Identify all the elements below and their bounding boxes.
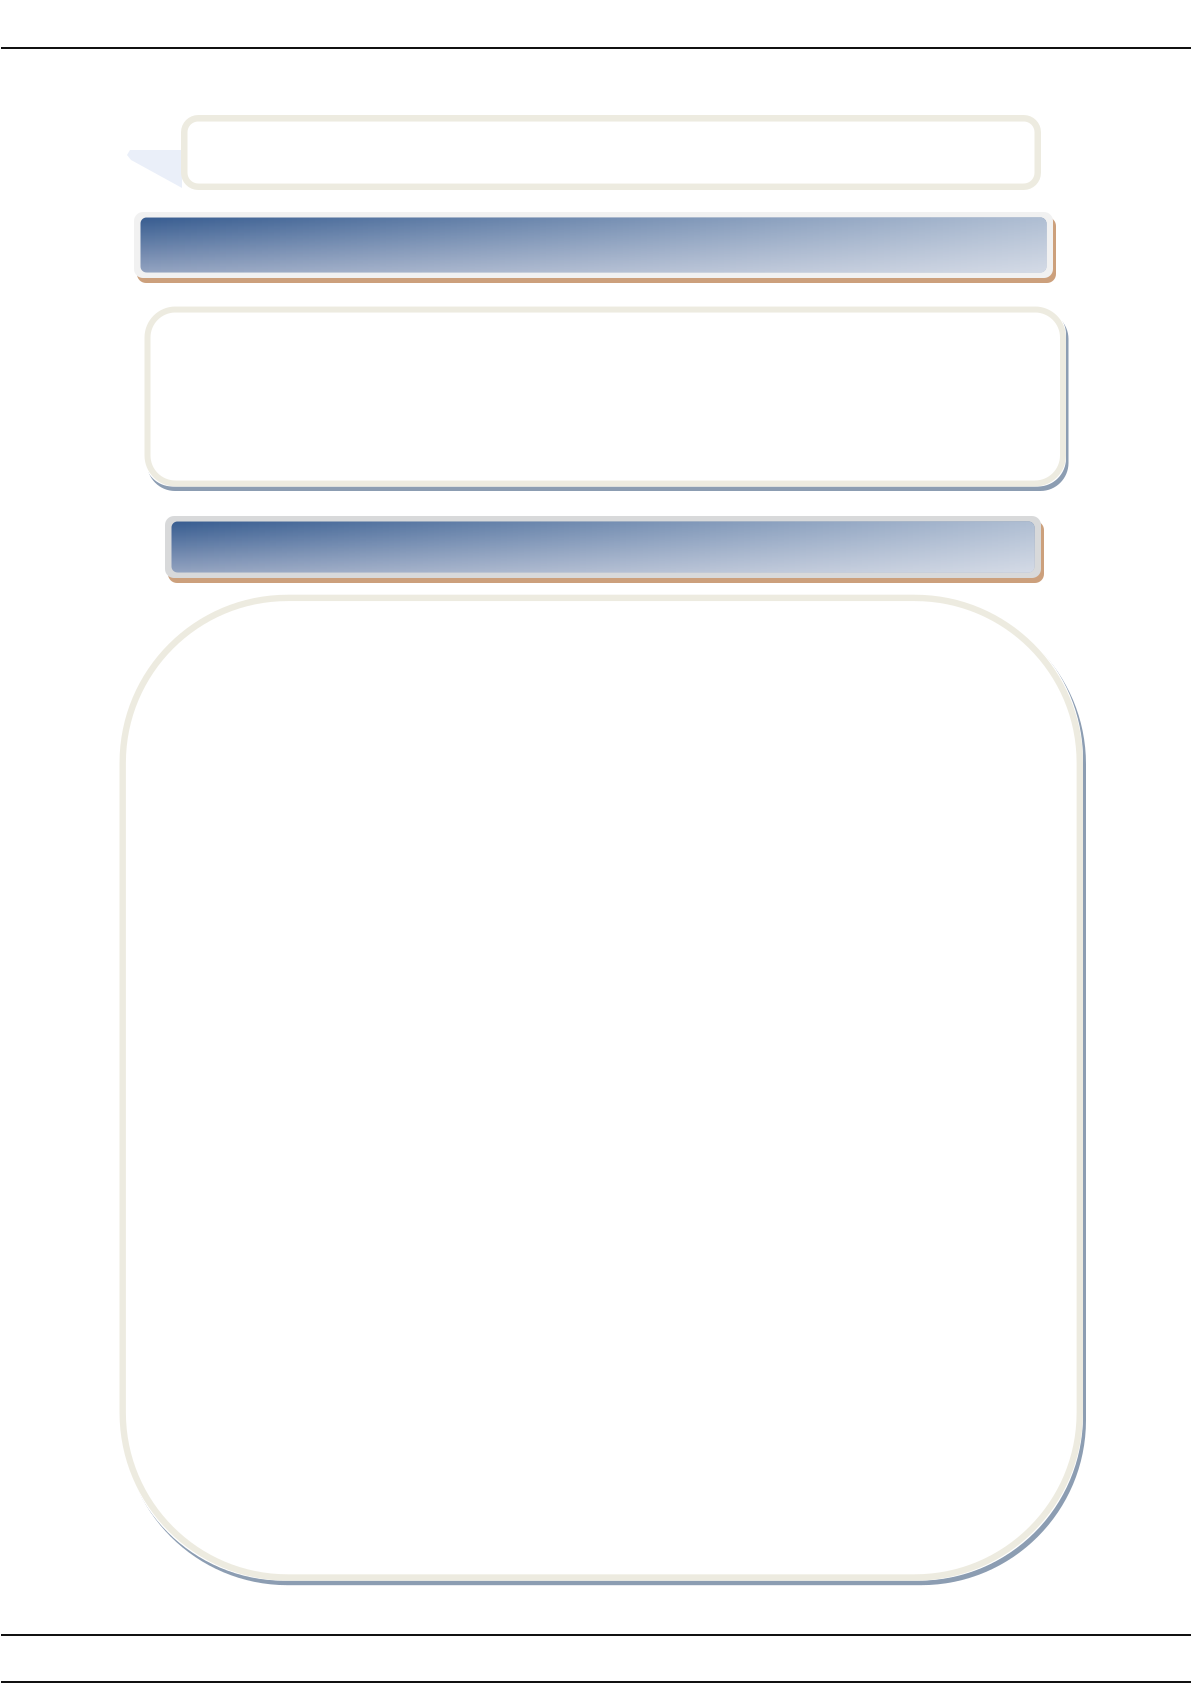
button[interactable]: Primary action — [0, 0, 1192, 1685]
button[interactable]: Secondary action — [0, 0, 1192, 1685]
button[interactable]: Content panel — [0, 0, 1192, 1685]
button[interactable]: Message — [0, 0, 1192, 1685]
button[interactable]: Details card — [0, 0, 1192, 1685]
